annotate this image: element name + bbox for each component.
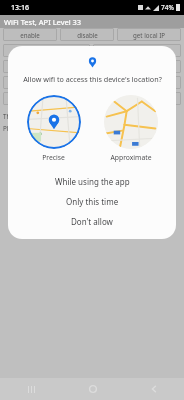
staticText: Allow wifi to access this device's locat… [23, 74, 162, 84]
button[interactable]: Precise [22, 95, 85, 162]
staticText: Please enable write system settings befo… [3, 124, 166, 133]
button[interactable]: get IP address of Access Point [3, 92, 107, 105]
staticText: get Signal strength [109, 79, 165, 87]
staticText: get IP address of Access Point [12, 95, 99, 103]
button[interactable]: get Available SSIDs [3, 60, 90, 73]
button[interactable]: While using the app [8, 171, 176, 191]
button[interactable]: get local IP [117, 28, 181, 41]
button[interactable]: get DNS servers [110, 92, 181, 105]
button[interactable]: enable [3, 28, 57, 41]
staticText: The Connect method is available starting… [3, 112, 176, 121]
staticText: is 5 GHz band supported [11, 79, 83, 87]
staticText: 13:16 [11, 3, 29, 13]
button[interactable]: Only this time [8, 191, 176, 211]
staticText: While using the app [55, 176, 130, 187]
button[interactable]: get SSID [3, 44, 90, 57]
button[interactable]: get BSSID [93, 44, 181, 57]
staticText: Only this time [66, 196, 119, 207]
staticText: Approximate [110, 153, 152, 162]
staticText: Don't allow [71, 216, 113, 227]
button[interactable]: Approximate [99, 95, 162, 162]
staticText: enable [20, 31, 40, 39]
button[interactable]: disable [60, 28, 114, 41]
staticText: get DNS servers [122, 95, 169, 103]
staticText: get local IP [133, 31, 165, 39]
button[interactable]: is 5 GHz band supported [3, 76, 90, 89]
button[interactable]: get Connection Info [93, 60, 181, 73]
staticText: Precise [42, 153, 65, 162]
staticText: disable [77, 31, 98, 39]
staticText: 74% [161, 3, 174, 12]
staticText: WiFi Test, API Level 33 [4, 17, 82, 27]
button[interactable]: Don't allow [8, 211, 176, 231]
button[interactable]: get Signal strength [93, 76, 181, 89]
